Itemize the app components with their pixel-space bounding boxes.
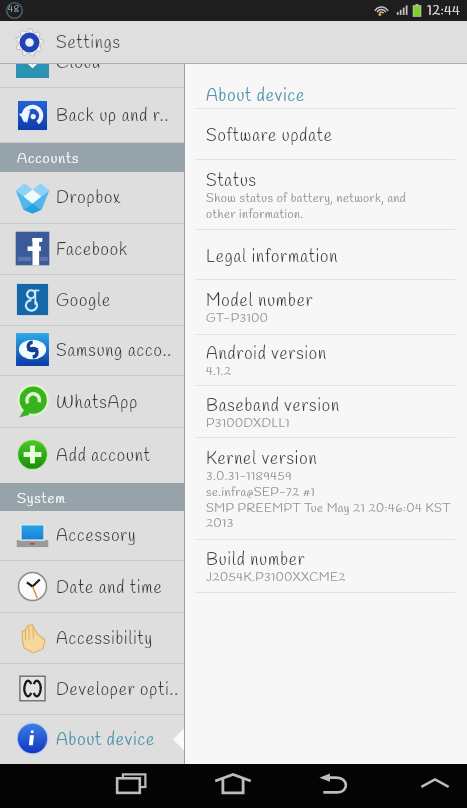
button[interactable]: Developer opti..: [0, 664, 185, 715]
staticText: P3100DXDLL1: [206, 415, 291, 432]
staticText: Developer opti..: [56, 679, 180, 702]
button[interactable]: Accessory: [0, 510, 185, 561]
button[interactable]: Legal information: [185, 230, 467, 280]
staticText: Back up and r..: [56, 105, 170, 128]
button[interactable]: WhatsApp: [0, 376, 185, 428]
staticText: Legal information: [206, 246, 339, 269]
button[interactable]: Baseband version: [185, 386, 467, 438]
staticText: Cloud: [56, 52, 102, 75]
button[interactable]: Dropbox: [0, 171, 185, 224]
button[interactable]: Model number: [185, 280, 467, 335]
button[interactable]: Date and time: [0, 561, 185, 613]
button[interactable]: Build number: [185, 540, 467, 593]
staticText: Facebook: [56, 239, 128, 262]
button[interactable]: Accessibility: [0, 613, 185, 664]
button[interactable]: Show keyboard: [413, 764, 457, 808]
staticText: Model number: [206, 290, 314, 313]
staticText: Samsung acco..: [56, 340, 173, 363]
staticText: se.infra@SEP-72 #1: [206, 484, 316, 501]
staticText: WhatsApp: [56, 392, 139, 415]
button[interactable]: Back: [311, 764, 355, 808]
button[interactable]: About device: [185, 64, 467, 109]
staticText: Dropbox: [56, 187, 121, 210]
staticText: Google: [56, 290, 112, 313]
button[interactable]: Home: [211, 764, 255, 808]
staticText: Accounts: [17, 149, 80, 168]
staticText: other information.: [206, 206, 304, 223]
staticText: 2013: [206, 515, 234, 532]
staticText: Date and time: [56, 577, 163, 600]
button[interactable]: Recent apps: [109, 764, 153, 808]
staticText: Software update: [206, 125, 333, 148]
staticText: 3.0.31-1189459: [206, 468, 292, 485]
staticText: Accessibility: [56, 628, 153, 651]
button[interactable]: Software update: [185, 109, 467, 160]
staticText: About device: [56, 729, 155, 752]
staticText: Settings: [56, 32, 121, 55]
button[interactable]: Google: [0, 275, 185, 326]
staticText: Android version: [206, 343, 327, 366]
staticText: System: [17, 489, 66, 508]
button[interactable]: Status: [185, 160, 467, 230]
button[interactable]: Back up and r..: [0, 88, 185, 143]
staticText: 4.1.2: [206, 363, 232, 380]
staticText: Show status of battery, network, and: [206, 190, 407, 207]
button[interactable]: About device: [0, 715, 185, 764]
staticText: Baseband version: [206, 395, 340, 418]
button[interactable]: Kernel version: [185, 438, 467, 540]
staticText: SMP PREEMPT Tue May 21 20:46:04 KST: [206, 500, 451, 517]
staticText: J2054K.P3100XXCME2: [206, 569, 346, 586]
staticText: 48: [8, 4, 21, 16]
staticText: 12:44: [427, 2, 461, 21]
staticText: Accessory: [56, 525, 137, 548]
staticText: Kernel version: [206, 448, 318, 471]
button[interactable]: Cloud: [0, 37, 185, 88]
staticText: Add account: [56, 445, 151, 468]
staticText: Build number: [206, 549, 306, 572]
button[interactable]: Android version: [185, 335, 467, 386]
button[interactable]: Facebook: [0, 224, 185, 275]
staticText: Status: [206, 170, 257, 193]
staticText: GT-P3100: [206, 310, 269, 327]
button[interactable]: Samsung acco..: [0, 325, 185, 376]
staticText: About device: [206, 85, 305, 108]
button[interactable]: Add account: [0, 427, 185, 483]
